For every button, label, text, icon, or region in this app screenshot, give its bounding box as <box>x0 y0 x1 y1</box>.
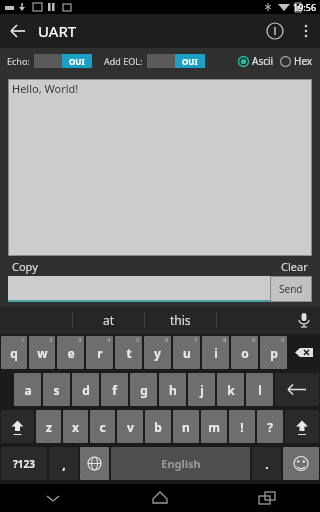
button[interactable]: Hello, World! <box>8 79 312 256</box>
staticText: g <box>140 382 148 398</box>
button[interactable]: l <box>246 373 273 406</box>
button[interactable]: at <box>73 306 144 334</box>
staticText: at <box>103 312 115 328</box>
button[interactable]: Back <box>0 14 34 48</box>
staticText: 2 <box>49 336 53 344</box>
staticText: ?123 <box>13 457 35 471</box>
staticText: 4 <box>107 336 111 344</box>
button[interactable]: j <box>188 373 215 406</box>
button[interactable]: Enter <box>275 373 319 406</box>
staticText: l <box>258 382 262 398</box>
staticText: j <box>200 382 204 398</box>
staticText: UART <box>38 21 77 41</box>
staticText: 9 <box>252 336 256 344</box>
button[interactable]: k <box>217 373 244 406</box>
button[interactable]: ! <box>229 410 255 443</box>
staticText: ! <box>240 419 244 435</box>
staticText: OUI <box>69 56 85 67</box>
button[interactable]: Home <box>106 484 213 512</box>
button[interactable]: Shift <box>285 410 319 443</box>
button[interactable]: t <box>115 336 142 369</box>
button[interactable]: Hex <box>280 54 313 68</box>
button[interactable]: q <box>1 336 27 369</box>
staticText: Clear <box>281 259 308 274</box>
button[interactable]: this <box>145 306 216 334</box>
staticText: English <box>161 456 201 471</box>
staticText: z <box>46 419 52 435</box>
button[interactable]: , <box>49 447 78 480</box>
staticText: x <box>72 419 79 435</box>
button[interactable]: Emoji <box>283 447 319 480</box>
staticText: q <box>10 345 18 361</box>
staticText: 6 <box>165 336 169 344</box>
button[interactable]: More options <box>292 17 320 45</box>
button[interactable]: p <box>260 336 287 369</box>
button[interactable]: v <box>117 410 143 443</box>
staticText: t <box>126 345 132 361</box>
staticText: OUI <box>182 56 198 67</box>
button[interactable]: OUI <box>147 54 205 68</box>
button[interactable]: c <box>90 410 115 443</box>
staticText: . <box>265 456 269 472</box>
button[interactable]: w <box>29 336 55 369</box>
staticText: 19:56 <box>293 1 317 13</box>
button[interactable]: English <box>111 447 250 480</box>
staticText: Copy <box>12 259 38 274</box>
button[interactable]: Back <box>0 484 106 512</box>
staticText: this <box>170 312 191 328</box>
button[interactable]: o <box>231 336 258 369</box>
button[interactable]: n <box>173 410 199 443</box>
staticText: Send <box>279 282 303 296</box>
staticText: i <box>214 345 218 361</box>
button[interactable]: Ascii <box>238 54 274 68</box>
button[interactable]: s <box>43 373 70 406</box>
staticText: p <box>270 345 278 361</box>
button[interactable]: u <box>173 336 200 369</box>
button[interactable]: Clear <box>281 259 308 274</box>
button[interactable]: Recent apps <box>213 484 320 512</box>
staticText: Hello, World! <box>12 81 79 96</box>
staticText: h <box>169 382 177 398</box>
staticText: ? <box>267 419 273 435</box>
staticText: , <box>62 456 66 472</box>
button[interactable]: ?123 <box>1 447 47 480</box>
staticText: w <box>37 345 48 361</box>
button[interactable]: z <box>36 410 61 443</box>
button[interactable]: e <box>57 336 84 369</box>
staticText: v <box>127 419 134 435</box>
staticText: o <box>241 345 249 361</box>
staticText: a <box>24 382 32 398</box>
staticText: 3 <box>78 336 82 344</box>
button[interactable]: ? <box>257 410 283 443</box>
button[interactable]: . <box>252 447 281 480</box>
staticText: b <box>154 419 162 435</box>
button[interactable]: b <box>145 410 171 443</box>
button[interactable]: y <box>144 336 171 369</box>
button[interactable]: g <box>130 373 157 406</box>
button[interactable]: x <box>63 410 88 443</box>
button[interactable] <box>8 276 270 302</box>
button[interactable]: Shift <box>1 410 34 443</box>
button[interactable]: Info <box>258 14 292 48</box>
button[interactable]: Copy <box>12 259 38 274</box>
staticText: e <box>67 345 75 361</box>
button[interactable]: Change language <box>80 447 109 480</box>
button[interactable]: a <box>14 373 41 406</box>
staticText: 0 <box>281 336 285 344</box>
staticText: f <box>112 382 117 398</box>
button[interactable]: Send <box>270 276 312 302</box>
button[interactable]: Voice input <box>288 306 320 334</box>
button[interactable]: i <box>202 336 229 369</box>
button[interactable]: r <box>86 336 113 369</box>
staticText: Ascii <box>252 54 274 68</box>
button[interactable]: Backspace <box>289 336 319 369</box>
button[interactable]: OUI <box>34 54 92 68</box>
button[interactable]: f <box>101 373 128 406</box>
staticText: 7 <box>194 336 198 344</box>
button[interactable]: m <box>201 410 227 443</box>
staticText: r <box>97 345 103 361</box>
button[interactable]: d <box>72 373 99 406</box>
button[interactable]: h <box>159 373 186 406</box>
